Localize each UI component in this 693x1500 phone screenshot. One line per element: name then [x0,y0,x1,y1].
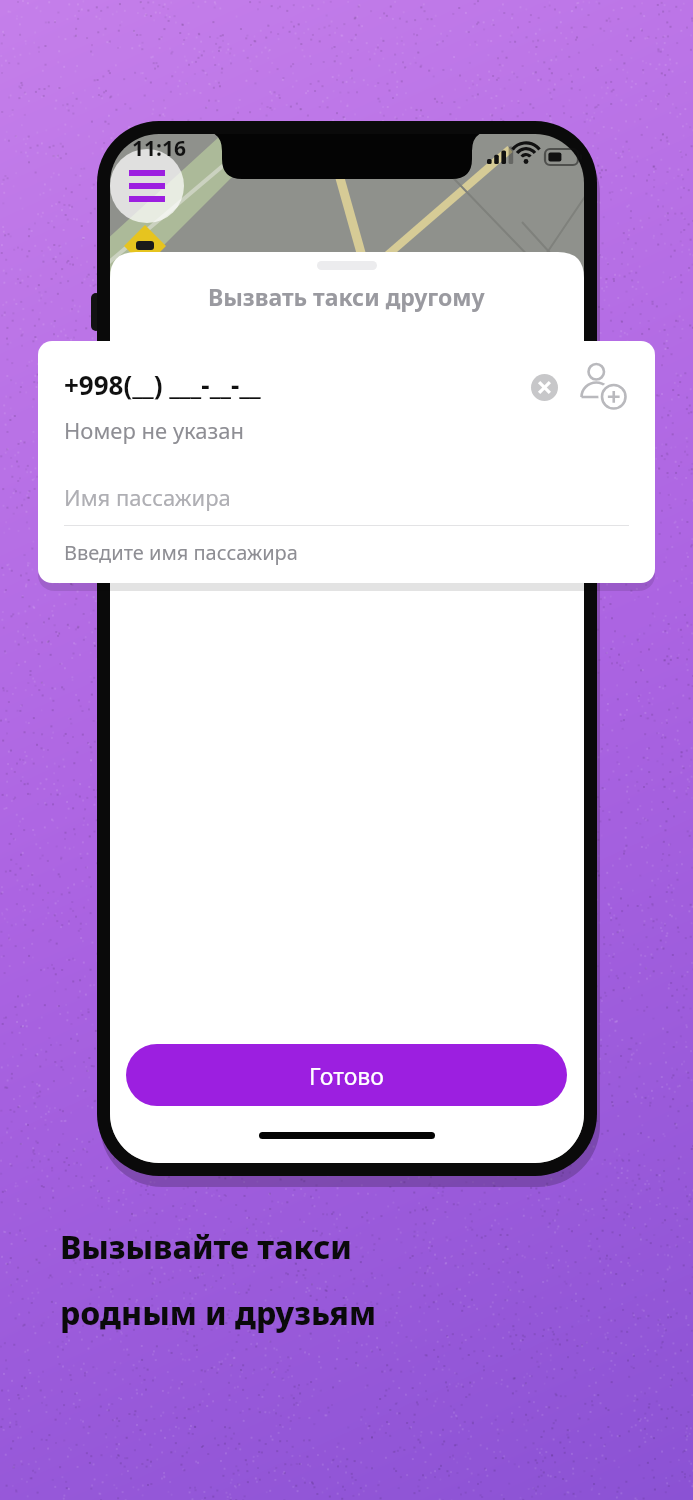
staticText: Вызвать такси другому [208,281,485,312]
staticText: родным и друзьям [60,1291,377,1335]
staticText: Готово [309,1060,384,1091]
staticText: +998(__) ___-__-__ [64,367,261,402]
button[interactable]: Очистить номер [518,361,570,413]
staticText: 11:16 [132,134,186,163]
button[interactable]: Выбрать контакт [571,355,633,417]
staticText: Номер не указан [64,415,245,445]
staticText: Введите имя пассажира [64,539,298,566]
staticText: Вызывайте такси [60,1225,352,1269]
staticText: Имя пассажира [64,482,231,512]
button[interactable]: Готово [126,1044,567,1106]
